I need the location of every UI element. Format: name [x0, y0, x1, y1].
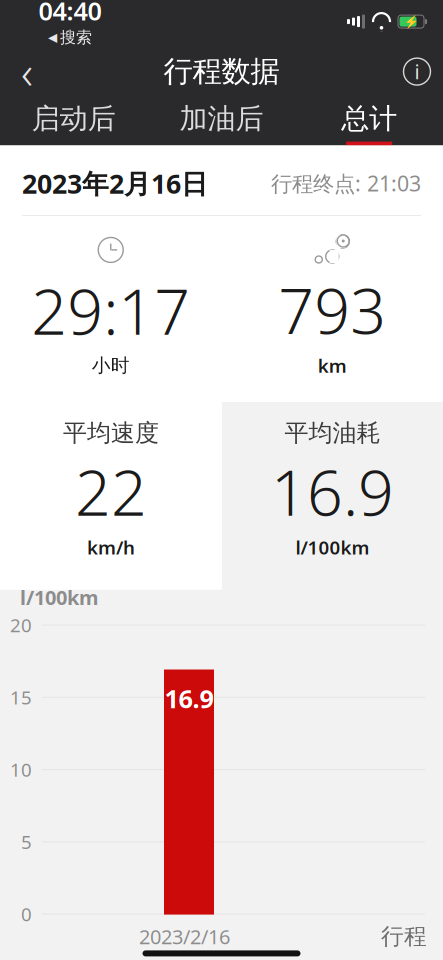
staticText: 22 — [75, 450, 147, 533]
staticText: 2023年2月16日 — [22, 166, 208, 201]
staticText: 启动后 — [32, 101, 116, 136]
staticText: 行程数据 — [163, 54, 279, 90]
staticText: 平均油耗 — [284, 418, 380, 448]
staticText: l/100km — [20, 584, 99, 611]
staticText: ◀ — [48, 31, 57, 44]
staticText: 16.9 — [164, 681, 213, 715]
staticText: 29:17 — [31, 269, 190, 352]
staticText: 行程 — [381, 923, 427, 950]
staticText: ‹ — [21, 41, 33, 102]
button[interactable]: 启动后 — [0, 96, 148, 146]
staticText: 04:40 — [38, 0, 101, 27]
staticText: km — [318, 353, 347, 378]
staticText: 15 — [10, 685, 32, 710]
staticText: 16.9 — [271, 450, 394, 533]
staticText: l/100km — [295, 535, 369, 560]
staticText: km/h — [87, 535, 135, 560]
button[interactable]: Information — [391, 48, 443, 96]
staticText: 搜索 — [60, 28, 92, 47]
staticText: 5 — [21, 829, 32, 854]
staticText: 小时 — [92, 354, 130, 377]
staticText: 0 — [21, 902, 32, 926]
staticText: ⚡ — [403, 15, 418, 28]
staticText: 20 — [10, 613, 32, 637]
staticText: 加油后 — [179, 101, 263, 136]
staticText: 平均速度 — [63, 418, 159, 448]
staticText: 793 — [278, 268, 386, 351]
button[interactable]: Back — [0, 48, 54, 96]
staticText: 总计 — [341, 101, 397, 136]
button[interactable]: 加油后 — [148, 96, 295, 146]
staticText: i — [414, 58, 419, 85]
button[interactable]: 总计 — [295, 96, 443, 146]
staticText: 2023/2/16 — [139, 923, 230, 950]
staticText: 10 — [10, 757, 32, 782]
staticText: 行程终点: 21:03 — [271, 169, 421, 197]
